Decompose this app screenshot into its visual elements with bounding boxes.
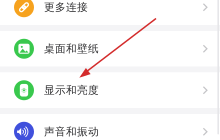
button[interactable]: 更多连接 xyxy=(0,0,220,25)
staticText: 显示和亮度 xyxy=(44,84,99,97)
button[interactable]: 声音和振动 xyxy=(0,114,220,140)
staticText: 声音和振动 xyxy=(44,125,99,138)
staticText: 桌面和壁纸 xyxy=(44,42,99,55)
button[interactable]: 桌面和壁纸 xyxy=(0,31,220,66)
staticText: 更多连接 xyxy=(44,1,88,14)
button[interactable]: 显示和亮度 xyxy=(0,72,220,108)
